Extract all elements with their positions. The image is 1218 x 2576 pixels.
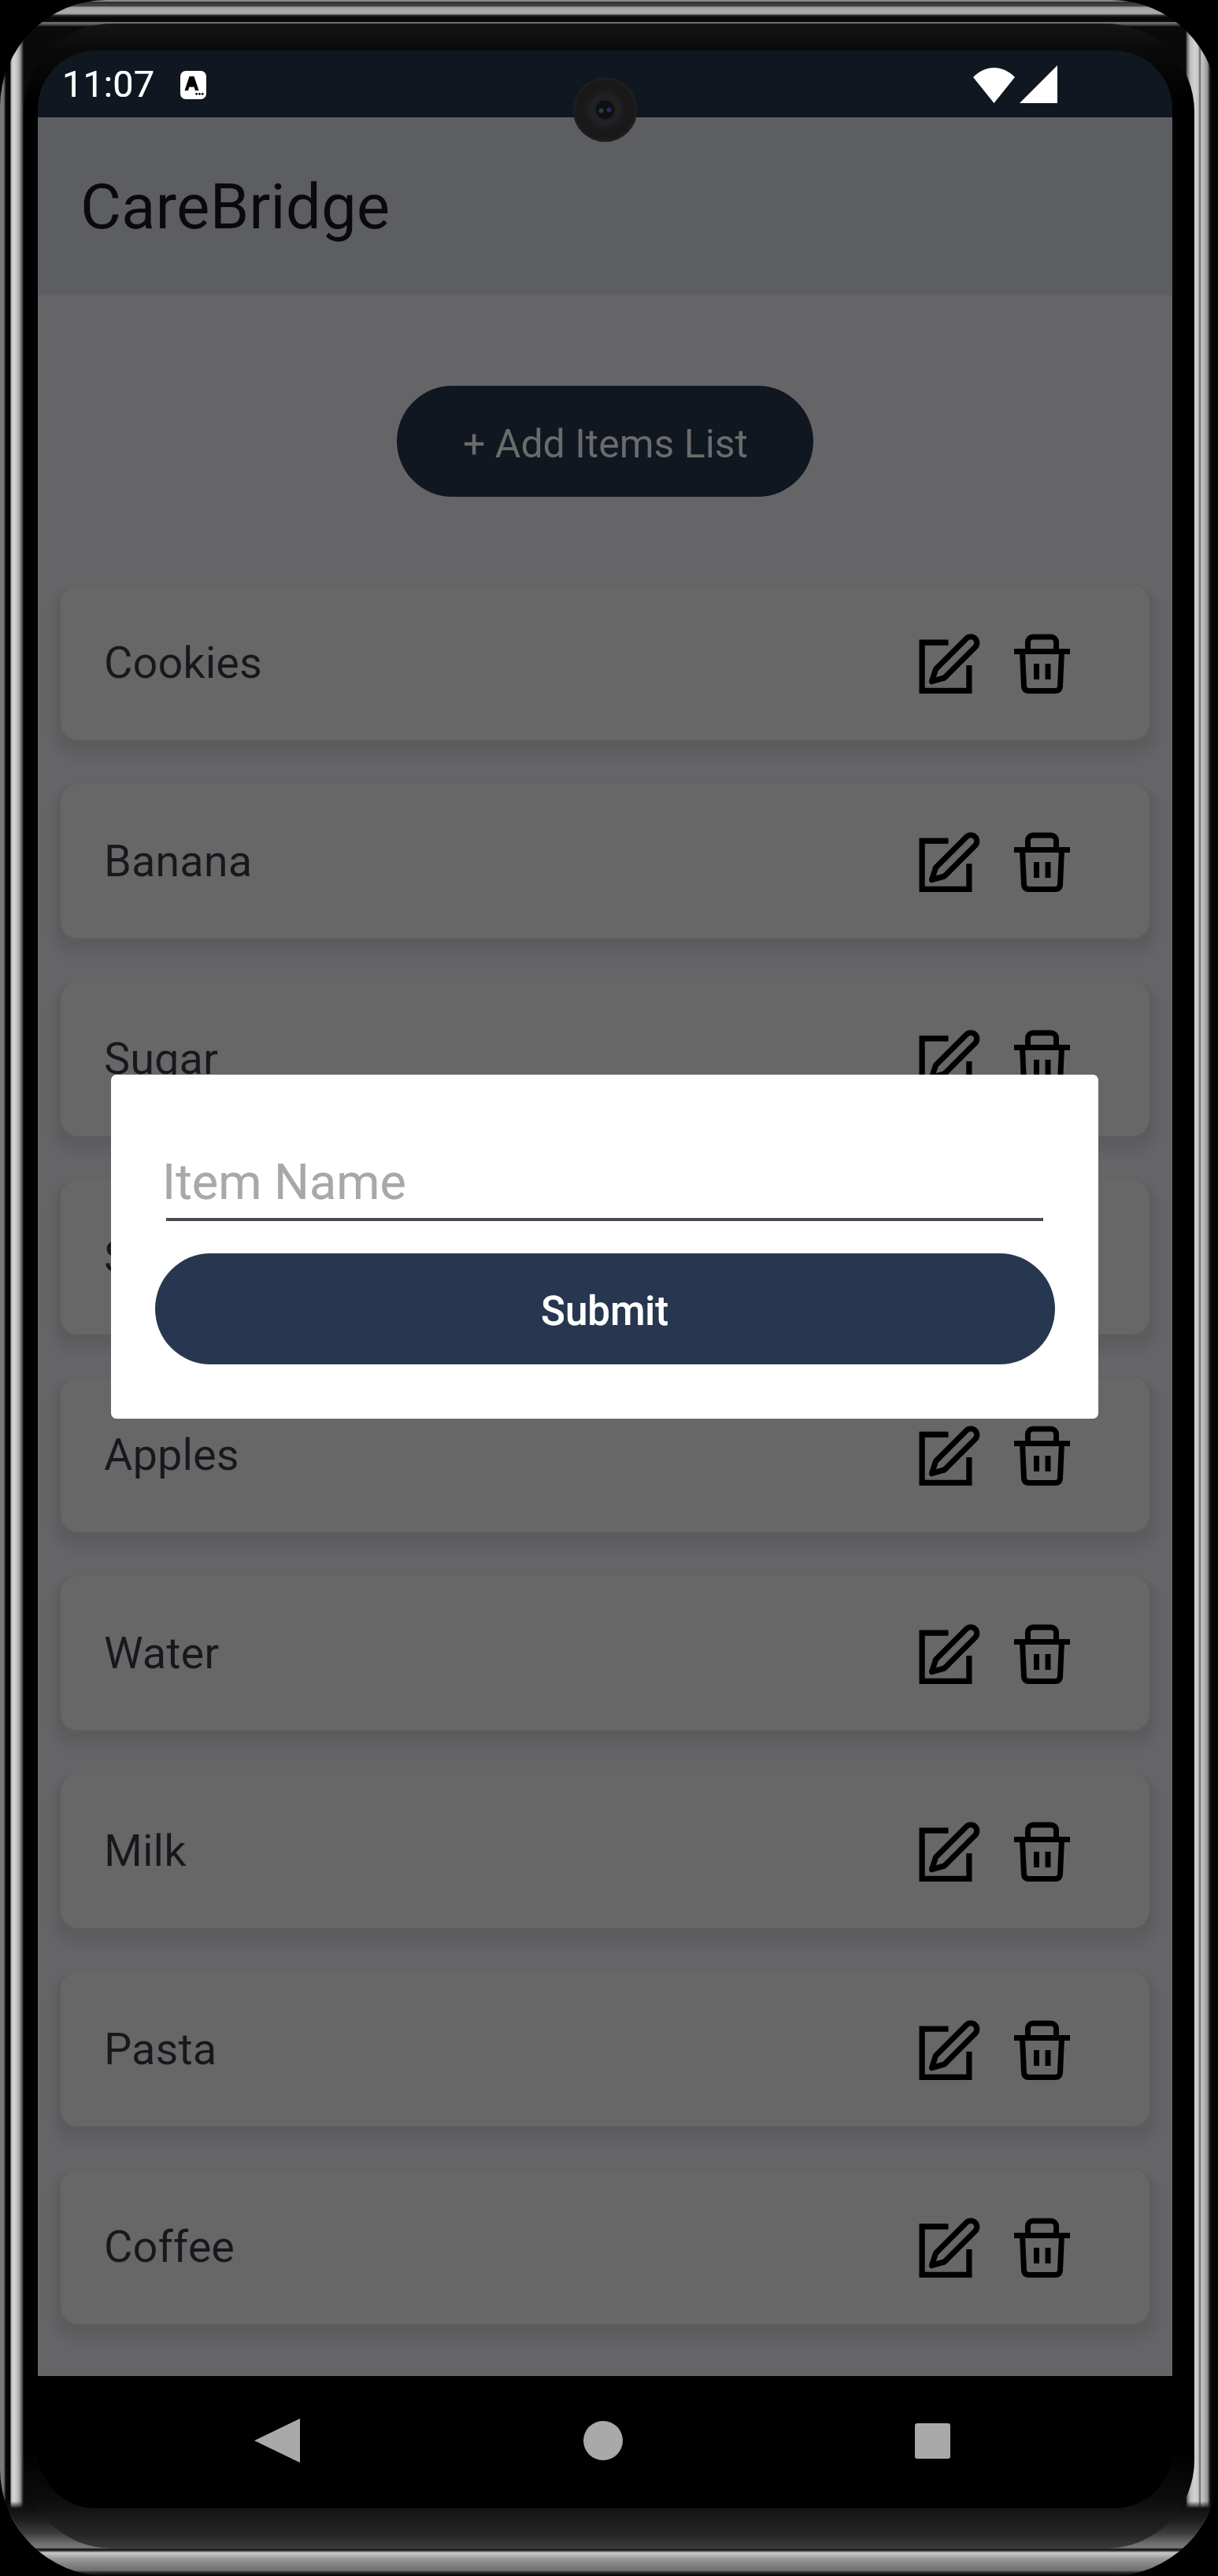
- staticText: Submit: [541, 1288, 669, 1335]
- button[interactable]: Delete item: [999, 2204, 1084, 2289]
- staticText: Apples: [104, 1429, 239, 1481]
- staticText: Milk: [104, 1825, 187, 1877]
- staticText: Banana: [104, 835, 253, 887]
- staticText: CareBridge: [80, 170, 391, 244]
- button[interactable]: Delete item: [999, 819, 1084, 904]
- button[interactable]: Edit item: [906, 819, 991, 904]
- button[interactable]: Delete item: [999, 1412, 1084, 1497]
- staticText: Sugar: [104, 1033, 219, 1085]
- staticText: Cookies: [104, 637, 262, 689]
- staticText: Item Name: [162, 1153, 406, 1212]
- button[interactable]: Edit item: [906, 2204, 991, 2289]
- button[interactable]: Delete item: [999, 2007, 1084, 2092]
- button[interactable]: Delete item: [999, 1215, 1084, 1300]
- button[interactable]: Edit item: [906, 620, 991, 705]
- staticText: Coffee: [104, 2221, 235, 2273]
- button[interactable]: Apples: [61, 1378, 1150, 1532]
- button[interactable]: Edit item: [906, 1215, 991, 1300]
- button[interactable]: Water: [61, 1576, 1150, 1730]
- button[interactable]: Milk: [61, 1774, 1150, 1928]
- button[interactable]: Delete item: [999, 620, 1084, 705]
- staticText: Water: [104, 1627, 220, 1679]
- button[interactable]: Edit item: [906, 1412, 991, 1497]
- button[interactable]: + Add Items List: [397, 386, 813, 497]
- button[interactable]: Cookies: [61, 586, 1150, 740]
- button[interactable]: Pasta: [61, 1972, 1150, 2126]
- staticText: Salt: [104, 1231, 180, 1283]
- button[interactable]: Edit item: [906, 2007, 991, 2092]
- button[interactable]: Edit item: [906, 1808, 991, 1893]
- button[interactable]: Recent apps: [885, 2393, 979, 2488]
- staticText: + Add Items List: [463, 421, 748, 468]
- button[interactable]: Coffee: [61, 2170, 1150, 2324]
- button[interactable]: Banana: [61, 784, 1150, 938]
- button[interactable]: Salt: [61, 1180, 1150, 1334]
- button[interactable]: Edit item: [906, 1611, 991, 1696]
- button[interactable]: Sugar: [61, 982, 1150, 1136]
- button[interactable]: Delete item: [999, 1016, 1084, 1101]
- button[interactable]: Delete item: [999, 1808, 1084, 1893]
- staticText: 11:07: [62, 62, 155, 105]
- staticText: Pasta: [104, 2023, 217, 2075]
- button[interactable]: Edit item: [906, 1016, 991, 1101]
- button[interactable]: Home: [556, 2393, 650, 2488]
- button[interactable]: Delete item: [999, 1611, 1084, 1696]
- button[interactable]: Back: [230, 2393, 324, 2488]
- button[interactable]: Submit: [155, 1253, 1055, 1364]
